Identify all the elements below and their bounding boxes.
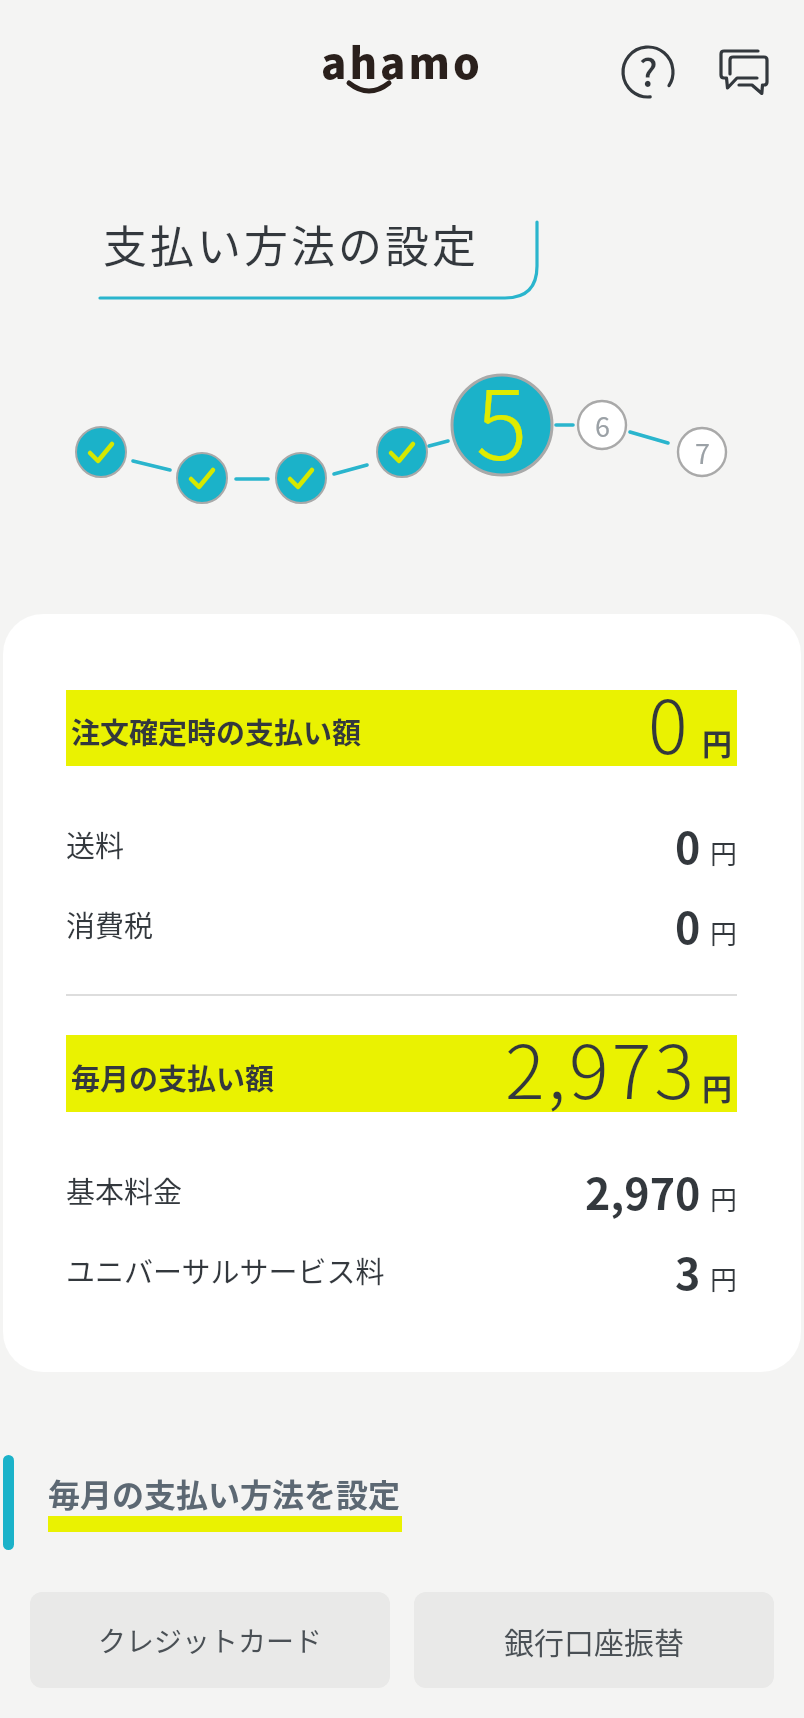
staticText: 毎月の支払い額 [71,1056,275,1098]
staticText: 2,973 [505,1013,697,1090]
button[interactable]: 毎月の支払い額 [66,1035,737,1112]
staticText: 支払い方法の設定 [103,212,479,276]
staticText: 消費税 [66,903,154,945]
staticText: ? [639,43,658,98]
staticText: 6 [595,406,610,445]
staticText: 7 [695,433,710,472]
button[interactable]: ahamo [300,30,504,110]
staticText: 3 [675,1240,701,1300]
staticText: 送料 [66,823,125,865]
staticText: 2,970 [585,1160,701,1220]
button[interactable]: クレジットカード [30,1592,390,1688]
staticText: クレジットカード [98,1620,323,1661]
staticText: 円 [710,1259,737,1298]
staticText: 円 [710,833,737,872]
staticText: 毎月の支払い方法を設定 [48,1470,401,1516]
button[interactable] [712,40,776,104]
staticText: ahamo [321,30,483,91]
button[interactable]: 毎月の支払い方法を設定 [48,1470,401,1516]
staticText: 銀行口座振替 [504,1619,684,1662]
staticText: 0 [675,814,701,874]
button[interactable]: 銀行口座振替 [414,1592,774,1688]
staticText: 円 [702,720,732,763]
staticText: 5 [476,349,528,449]
button[interactable]: 注文確定時の支払い額 [66,690,737,766]
staticText: 注文確定時の支払い額 [71,710,362,752]
staticText: ユニバーサルサービス料 [66,1249,385,1291]
staticText: 円 [702,1065,732,1108]
button[interactable]: ? [620,44,676,100]
staticText: 0 [648,668,691,744]
staticText: 円 [710,913,737,952]
staticText: 0 [675,894,701,954]
staticText: 円 [710,1179,737,1218]
staticText: 基本料金 [66,1169,183,1211]
